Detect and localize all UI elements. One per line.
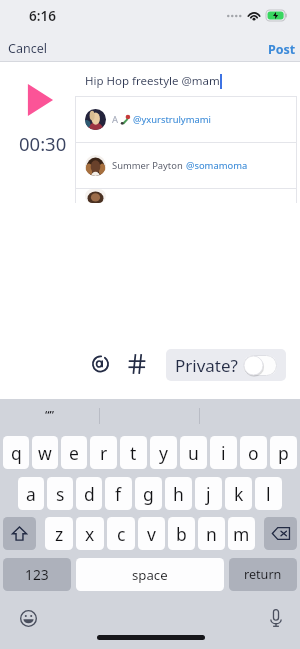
button[interactable]: g xyxy=(135,477,162,510)
staticText: A xyxy=(112,113,119,126)
button[interactable]: Hashtag xyxy=(122,349,151,378)
staticText: e xyxy=(69,441,79,465)
staticText: Cancel xyxy=(8,40,47,57)
staticText: j xyxy=(206,482,211,506)
staticText: p xyxy=(278,441,289,465)
button[interactable]: Post xyxy=(260,36,300,63)
staticText: n xyxy=(206,522,217,546)
staticText: “” xyxy=(45,407,55,422)
button[interactable]: d xyxy=(76,477,102,510)
button[interactable]: z xyxy=(45,517,73,550)
staticText: r xyxy=(100,441,108,465)
button[interactable]: l xyxy=(255,477,282,510)
staticText: x xyxy=(85,522,95,546)
staticText: i xyxy=(221,441,226,465)
button[interactable]: o xyxy=(240,436,267,469)
staticText: 6:16 xyxy=(29,7,56,25)
button[interactable]: Shift xyxy=(3,517,36,550)
button[interactable]: Mention xyxy=(86,349,115,378)
button[interactable]: v xyxy=(138,517,165,550)
button[interactable]: Cancel xyxy=(0,35,55,62)
staticText: w xyxy=(38,441,52,465)
button[interactable]: a xyxy=(18,477,44,510)
button[interactable]: Backspace xyxy=(264,517,297,550)
button[interactable]: “” xyxy=(0,399,99,430)
staticText: Post xyxy=(268,41,296,58)
staticText: k xyxy=(234,482,244,506)
button[interactable]: u xyxy=(180,436,207,469)
button[interactable]: c xyxy=(107,517,135,550)
staticText: u xyxy=(188,441,199,465)
staticText: d xyxy=(84,482,95,506)
button[interactable]: x xyxy=(76,517,104,550)
button[interactable]: f xyxy=(105,477,132,510)
button[interactable]: i xyxy=(210,436,237,469)
button[interactable]: k xyxy=(225,477,252,510)
button[interactable]: A xyxy=(75,97,297,142)
button[interactable]: 123 xyxy=(3,558,71,591)
staticText: q xyxy=(11,441,22,465)
button[interactable]: s xyxy=(47,477,73,510)
staticText: y xyxy=(159,441,168,465)
button[interactable]: e xyxy=(61,436,87,469)
button[interactable]: n xyxy=(198,517,225,550)
button[interactable]: m xyxy=(228,517,255,550)
staticText: 123 xyxy=(25,565,49,584)
staticText: Hip Hop freestyle @mam xyxy=(85,73,220,89)
staticText: Summer Payton xyxy=(112,159,186,172)
staticText: s xyxy=(56,482,65,506)
button[interactable]: t xyxy=(120,436,147,469)
button[interactable] xyxy=(75,189,297,203)
button[interactable]: Play xyxy=(26,83,54,117)
staticText: b xyxy=(176,522,187,546)
staticText: a xyxy=(26,482,36,506)
button[interactable]: j xyxy=(195,477,222,510)
button[interactable]: p xyxy=(270,436,297,469)
staticText: h xyxy=(173,482,184,506)
button[interactable]: return xyxy=(229,558,297,591)
button[interactable]: w xyxy=(32,436,58,469)
staticText: m xyxy=(233,522,250,546)
button[interactable]: b xyxy=(168,517,195,550)
staticText: space xyxy=(132,566,168,584)
button[interactable]: Summer Payton xyxy=(75,143,297,188)
staticText: 00:30 xyxy=(19,131,67,156)
button[interactable]: Private? xyxy=(166,349,286,381)
button[interactable]: Emoji xyxy=(16,606,40,630)
staticText: f xyxy=(115,482,122,506)
staticText: v xyxy=(147,522,156,546)
staticText: g xyxy=(143,482,154,506)
button[interactable]: r xyxy=(90,436,117,469)
button[interactable]: q xyxy=(3,436,29,469)
staticText: z xyxy=(55,522,64,546)
staticText: t xyxy=(130,441,137,465)
staticText: c xyxy=(117,522,126,546)
staticText: o xyxy=(248,441,259,465)
staticText: return xyxy=(244,566,282,583)
staticText: l xyxy=(266,482,271,506)
button[interactable]: y xyxy=(150,436,177,469)
staticText: @yxurstrulymami xyxy=(133,113,211,126)
button[interactable]: space xyxy=(76,558,224,591)
button[interactable]: Dictate xyxy=(263,605,288,630)
staticText: Private? xyxy=(175,354,238,377)
button[interactable]: h xyxy=(165,477,192,510)
staticText: @somamoma xyxy=(186,159,248,172)
